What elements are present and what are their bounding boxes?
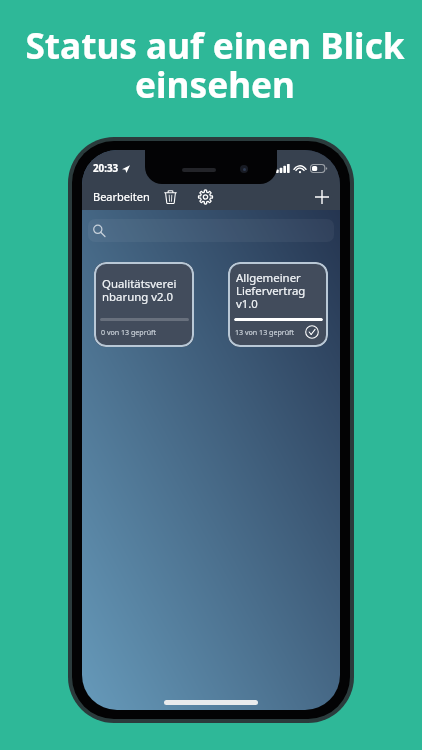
- staticText: 0 von 13 geprüft: [101, 327, 157, 337]
- staticText: 20:33: [93, 162, 119, 175]
- button[interactable]: Bearbeiten: [89, 187, 154, 207]
- button[interactable]: [88, 219, 334, 242]
- staticText: 13 von 13 geprüft: [235, 327, 295, 337]
- staticText: Bearbeiten: [93, 189, 150, 201]
- staticText: Allgemeiner Liefervertrag v1.0: [236, 270, 306, 312]
- staticText: Qualitätsverei nbarung v2.0: [102, 276, 177, 305]
- button[interactable]: Delete: [161, 187, 180, 207]
- staticText: Status auf einen Blick einsehen: [25, 21, 405, 108]
- button[interactable]: Allgemeiner Liefervertrag v1.0: [228, 262, 328, 347]
- button[interactable]: Settings: [195, 187, 216, 207]
- button[interactable]: Qualitätsverei nbarung v2.0: [94, 262, 194, 347]
- button[interactable]: Add: [312, 187, 332, 207]
